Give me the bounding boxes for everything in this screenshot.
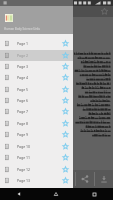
- button[interactable]: Page 1: [0, 38, 73, 49]
- staticText: Page 13: [17, 178, 31, 183]
- button[interactable]: Copy: [57, 170, 75, 188]
- button[interactable]: Download: [95, 170, 113, 188]
- button[interactable]: Page 11: [0, 152, 73, 163]
- staticText: Page 5: [17, 87, 29, 92]
- button[interactable]: Page 2: [0, 50, 73, 61]
- button[interactable]: Page 8: [0, 118, 73, 129]
- staticText: Page 1: [17, 41, 29, 46]
- staticText: Page 9: [17, 132, 29, 137]
- button[interactable]: Bookmark page 1: [61, 39, 70, 48]
- button[interactable]: Page 3: [0, 61, 73, 72]
- button[interactable]: Bookmark page 10: [61, 142, 70, 151]
- staticText: Page 7: [17, 109, 29, 114]
- button[interactable]: Back: [0, 188, 37, 200]
- button[interactable]: Bookmark page 9: [61, 130, 70, 139]
- button[interactable]: Page 10: [0, 141, 73, 152]
- button[interactable]: Page 7: [0, 106, 73, 117]
- button[interactable]: Page 6: [0, 95, 73, 106]
- button[interactable]: Page 5: [0, 84, 73, 95]
- staticText: Page 2: [17, 53, 29, 58]
- button[interactable]: Bookmark page 11: [61, 153, 70, 162]
- staticText: Page 6: [17, 98, 29, 103]
- staticText: Page 11: [17, 155, 31, 160]
- staticText: Page 4: [17, 75, 29, 80]
- button[interactable]: Bookmark page 7: [61, 107, 70, 116]
- staticText: Human Body Science Urdu: [4, 27, 41, 31]
- button[interactable]: Bookmark page 6: [61, 96, 70, 105]
- button[interactable]: Home: [37, 188, 75, 200]
- button[interactable]: Previous page: [19, 170, 37, 188]
- button[interactable]: Bookmark: [0, 170, 18, 188]
- button[interactable]: Bookmark page 8: [61, 119, 70, 128]
- button[interactable]: Page 4: [0, 72, 73, 83]
- staticText: Page 10: [17, 144, 31, 149]
- button[interactable]: Page 13: [0, 175, 73, 186]
- button[interactable]: Page 9: [0, 129, 73, 140]
- button[interactable]: Bookmark page 4: [61, 73, 70, 82]
- staticText: Page 3: [17, 64, 29, 69]
- staticText: Page 8: [17, 121, 29, 126]
- button[interactable]: Share: [76, 170, 94, 188]
- button[interactable]: Bookmark page 2: [61, 51, 70, 60]
- button[interactable]: Favorite: [100, 7, 109, 16]
- button[interactable]: Recent apps: [75, 188, 113, 200]
- button[interactable]: Page 12: [0, 164, 73, 175]
- button[interactable]: Bookmark page 13: [61, 176, 70, 185]
- button[interactable]: Bookmark page 5: [61, 85, 70, 94]
- staticText: Page 12: [17, 167, 31, 172]
- button[interactable]: Bookmark page 3: [61, 62, 70, 71]
- button[interactable]: Bookmark page 12: [61, 165, 70, 174]
